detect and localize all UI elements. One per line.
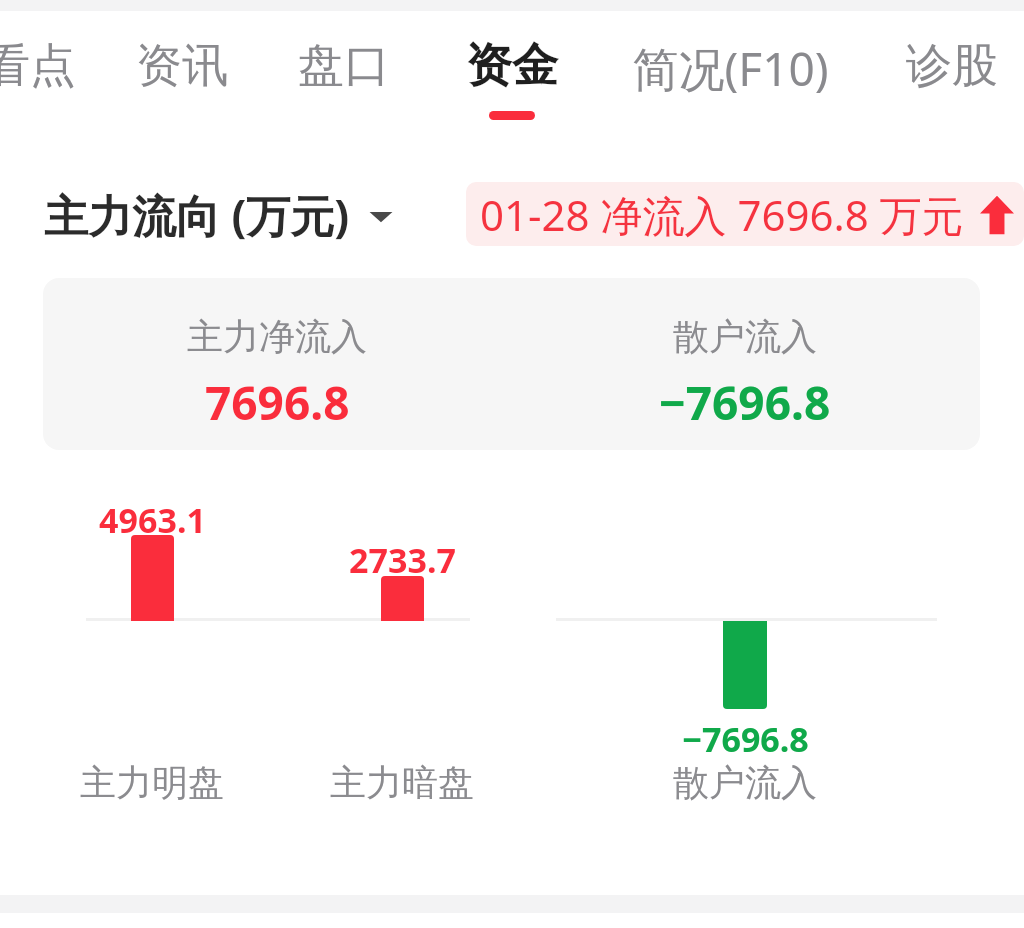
button[interactable]: 诊股 — [837, 11, 1024, 136]
button[interactable]: 盘口 — [229, 11, 459, 136]
staticText: 主力流向 (万元) — [44, 185, 350, 245]
staticText: 散户流入 — [673, 760, 817, 805]
staticText: 资讯 — [136, 37, 228, 95]
button[interactable]: 主力流向 (万元) — [36, 178, 394, 252]
staticText: 散户流入 — [673, 314, 817, 359]
staticText: 4963.1 — [99, 497, 206, 543]
staticText: 主力暗盘 — [330, 760, 474, 805]
other: 资金流向柱状图 — [0, 0, 1024, 928]
staticText: 01-28 净流入 7696.8 万元 — [480, 186, 964, 243]
staticText: 资金 — [466, 37, 558, 95]
staticText: −7696.8 — [682, 716, 809, 762]
button[interactable]: 简况(F10) — [615, 11, 845, 136]
staticText: 简况(F10) — [632, 37, 829, 100]
staticText: −7696.8 — [659, 371, 831, 434]
button[interactable]: 资讯 — [67, 11, 297, 136]
button[interactable]: 01-28 净流入 7696.8 万元 — [466, 182, 1024, 246]
staticText: 盘口 — [298, 37, 390, 95]
staticText: 7696.8 — [205, 371, 350, 434]
button[interactable]: 主力净流入 — [43, 278, 980, 450]
staticText: 2733.7 — [349, 537, 456, 583]
staticText: 看点 — [0, 37, 76, 95]
staticText: 诊股 — [906, 37, 998, 95]
button[interactable]: 资金 — [397, 11, 627, 136]
staticText: 主力明盘 — [80, 760, 224, 805]
button[interactable]: 看点 — [0, 11, 145, 136]
staticText: 主力净流入 — [187, 314, 367, 359]
